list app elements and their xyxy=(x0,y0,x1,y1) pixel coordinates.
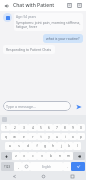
staticText: p xyxy=(80,135,82,139)
staticText: r xyxy=(32,135,34,139)
staticText: j xyxy=(61,144,62,148)
staticText: 2 xyxy=(14,126,16,130)
staticText: English xyxy=(42,165,51,169)
staticText: 3 xyxy=(23,126,25,130)
button[interactable]: j xyxy=(57,142,65,150)
button[interactable]: u xyxy=(53,133,61,140)
staticText: v xyxy=(41,154,43,158)
button[interactable]: 1 xyxy=(1,124,10,131)
staticText: , xyxy=(18,165,19,169)
staticText: . xyxy=(67,165,68,169)
button[interactable]: e xyxy=(19,133,28,140)
button[interactable]: Home xyxy=(41,174,45,178)
staticText: g xyxy=(44,144,46,148)
button[interactable]: 8 xyxy=(61,124,69,131)
button[interactable]: k xyxy=(65,142,73,150)
staticText: h xyxy=(52,144,54,148)
button[interactable]: b xyxy=(46,152,55,160)
staticText: u xyxy=(56,135,58,139)
button[interactable]: Emoji xyxy=(22,162,30,171)
button[interactable]: 5 xyxy=(37,124,45,131)
button[interactable]: what is your routine? xyxy=(43,34,83,43)
button[interactable]: t xyxy=(37,133,45,140)
staticText: 7 xyxy=(56,126,58,130)
staticText: b xyxy=(50,154,52,158)
staticText: f xyxy=(36,144,38,148)
button[interactable]: a xyxy=(5,142,14,150)
button[interactable]: 4 xyxy=(28,124,37,131)
button[interactable]: Back xyxy=(3,2,11,10)
staticText: 6 xyxy=(48,126,50,130)
button[interactable]: Recents xyxy=(70,174,74,178)
button[interactable]: c xyxy=(28,152,37,160)
staticText: what is your routine? xyxy=(46,36,80,41)
button[interactable]: Back xyxy=(12,174,16,178)
button[interactable]: Backspace xyxy=(73,152,85,160)
button[interactable]: s xyxy=(14,142,23,150)
staticText: 9 xyxy=(72,126,74,130)
button[interactable]: z xyxy=(12,152,20,160)
button[interactable]: 7 xyxy=(53,124,61,131)
button[interactable]: , xyxy=(14,162,22,171)
staticText: c xyxy=(32,154,34,158)
button[interactable]: Shift xyxy=(1,152,12,160)
staticText: t xyxy=(40,135,42,139)
staticText: z xyxy=(15,154,17,158)
button[interactable]: o xyxy=(69,133,77,140)
staticText: w xyxy=(13,135,16,139)
button[interactable]: w xyxy=(10,133,19,140)
staticText: ?123 xyxy=(4,165,11,169)
staticText: 4 xyxy=(32,126,34,130)
button[interactable]: m xyxy=(64,152,73,160)
staticText: i xyxy=(65,135,66,139)
button[interactable]: r xyxy=(28,133,37,140)
button[interactable]: Type a message... xyxy=(3,101,71,111)
staticText: e xyxy=(23,135,25,139)
button[interactable]: Responding to Patient Chats xyxy=(3,45,55,54)
staticText: Symptoms: joint pain, morning stiffness,… xyxy=(16,20,81,29)
staticText: 1 xyxy=(5,126,7,130)
staticText: Type a message... xyxy=(6,104,36,109)
staticText: Responding to Patient Chats xyxy=(6,47,52,52)
button[interactable]: Send xyxy=(74,102,83,111)
button[interactable]: d xyxy=(23,142,32,150)
staticText: k xyxy=(68,144,70,148)
staticText: o xyxy=(72,135,74,139)
button[interactable]: f xyxy=(32,142,41,150)
button[interactable]: x xyxy=(20,152,28,160)
button[interactable]: 6 xyxy=(45,124,53,131)
button[interactable]: q xyxy=(1,133,10,140)
button[interactable]: i xyxy=(61,133,69,140)
staticText: m xyxy=(67,154,70,158)
button[interactable]: ?123 xyxy=(1,162,14,171)
staticText: 0 xyxy=(80,126,82,130)
staticText: 8 xyxy=(64,126,66,130)
button[interactable]: l xyxy=(73,142,81,150)
staticText: 5 xyxy=(40,126,42,130)
button[interactable]: Enter xyxy=(71,162,85,171)
button[interactable]: v xyxy=(37,152,46,160)
staticText: Chat with Patient xyxy=(13,2,55,9)
button[interactable]: n xyxy=(55,152,64,160)
button[interactable]: h xyxy=(49,142,57,150)
button[interactable]: English xyxy=(30,162,63,171)
staticText: s xyxy=(18,144,20,148)
button[interactable]: Delete xyxy=(76,2,83,9)
button[interactable]: 0 xyxy=(77,124,85,131)
staticText: y xyxy=(48,135,50,139)
button[interactable]: g xyxy=(41,142,49,150)
button[interactable]: 9 xyxy=(69,124,77,131)
button[interactable]: p xyxy=(77,133,85,140)
button[interactable]: y xyxy=(45,133,53,140)
button[interactable]: Chat with Patient xyxy=(13,2,66,9)
button[interactable]: Age: 54 years xyxy=(14,13,83,31)
staticText: x xyxy=(23,154,25,158)
button[interactable]: 2 xyxy=(10,124,19,131)
button[interactable]: Notes xyxy=(66,2,73,9)
button[interactable]: . xyxy=(63,162,71,171)
staticText: d xyxy=(27,144,29,148)
staticText: l xyxy=(77,144,78,148)
staticText: q xyxy=(5,135,7,139)
button[interactable]: 3 xyxy=(19,124,28,131)
